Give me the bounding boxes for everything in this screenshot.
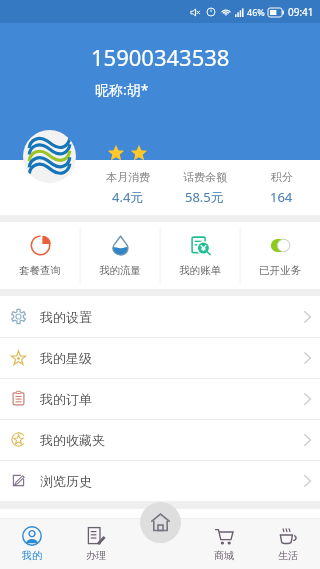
staticText: 58.5元 [185,188,224,206]
button[interactable]: 我的订单 [0,378,320,419]
staticText: 话费余额 [183,170,227,184]
staticText: 我的流量 [99,264,141,277]
staticText: 46% [247,6,265,18]
staticText: 我的账单 [179,264,221,277]
button[interactable]: 我的设置 [0,296,320,337]
staticText: 商城 [214,549,234,562]
staticText: 我的设置 [40,309,92,325]
staticText: 我的订单 [40,391,92,407]
staticText: 已开业务 [259,264,301,277]
button[interactable]: 话费余额 [166,170,243,206]
button[interactable]: 已开业务 [240,222,320,289]
staticText: 积分 [271,170,293,184]
staticText: 09:41 [288,5,314,19]
button[interactable]: 我的星级 [0,337,320,378]
staticText: 昵称:胡* [95,80,149,99]
staticText: 浏览历史 [40,473,92,489]
button[interactable]: Home [140,502,181,543]
staticText: 我的星级 [40,350,92,366]
button[interactable]: 办理 [64,519,128,569]
staticText: 164 [270,188,293,206]
button[interactable]: 我的收藏夹 [0,419,320,460]
button[interactable]: 生活 [256,519,320,569]
button[interactable]: 浏览历史 [0,460,320,501]
button[interactable]: 套餐查询 [0,222,80,289]
staticText: 4.4元 [112,188,144,206]
button[interactable]: 我的 [0,519,64,569]
staticText: 本月消费 [106,170,150,184]
staticText: 我的 [22,549,42,562]
button[interactable]: 本月消费 [90,170,166,206]
button[interactable]: 我的账单 [160,222,240,289]
button[interactable]: 商城 [192,519,256,569]
staticText: 我的收藏夹 [40,432,105,448]
staticText: 15900343538 [91,42,230,72]
staticText: 套餐查询 [19,264,61,277]
staticText: 办理 [86,549,106,562]
staticText: 生活 [278,549,298,562]
button[interactable]: 积分 [243,170,320,206]
button[interactable]: Avatar [23,130,76,183]
button[interactable]: 我的流量 [80,222,160,289]
